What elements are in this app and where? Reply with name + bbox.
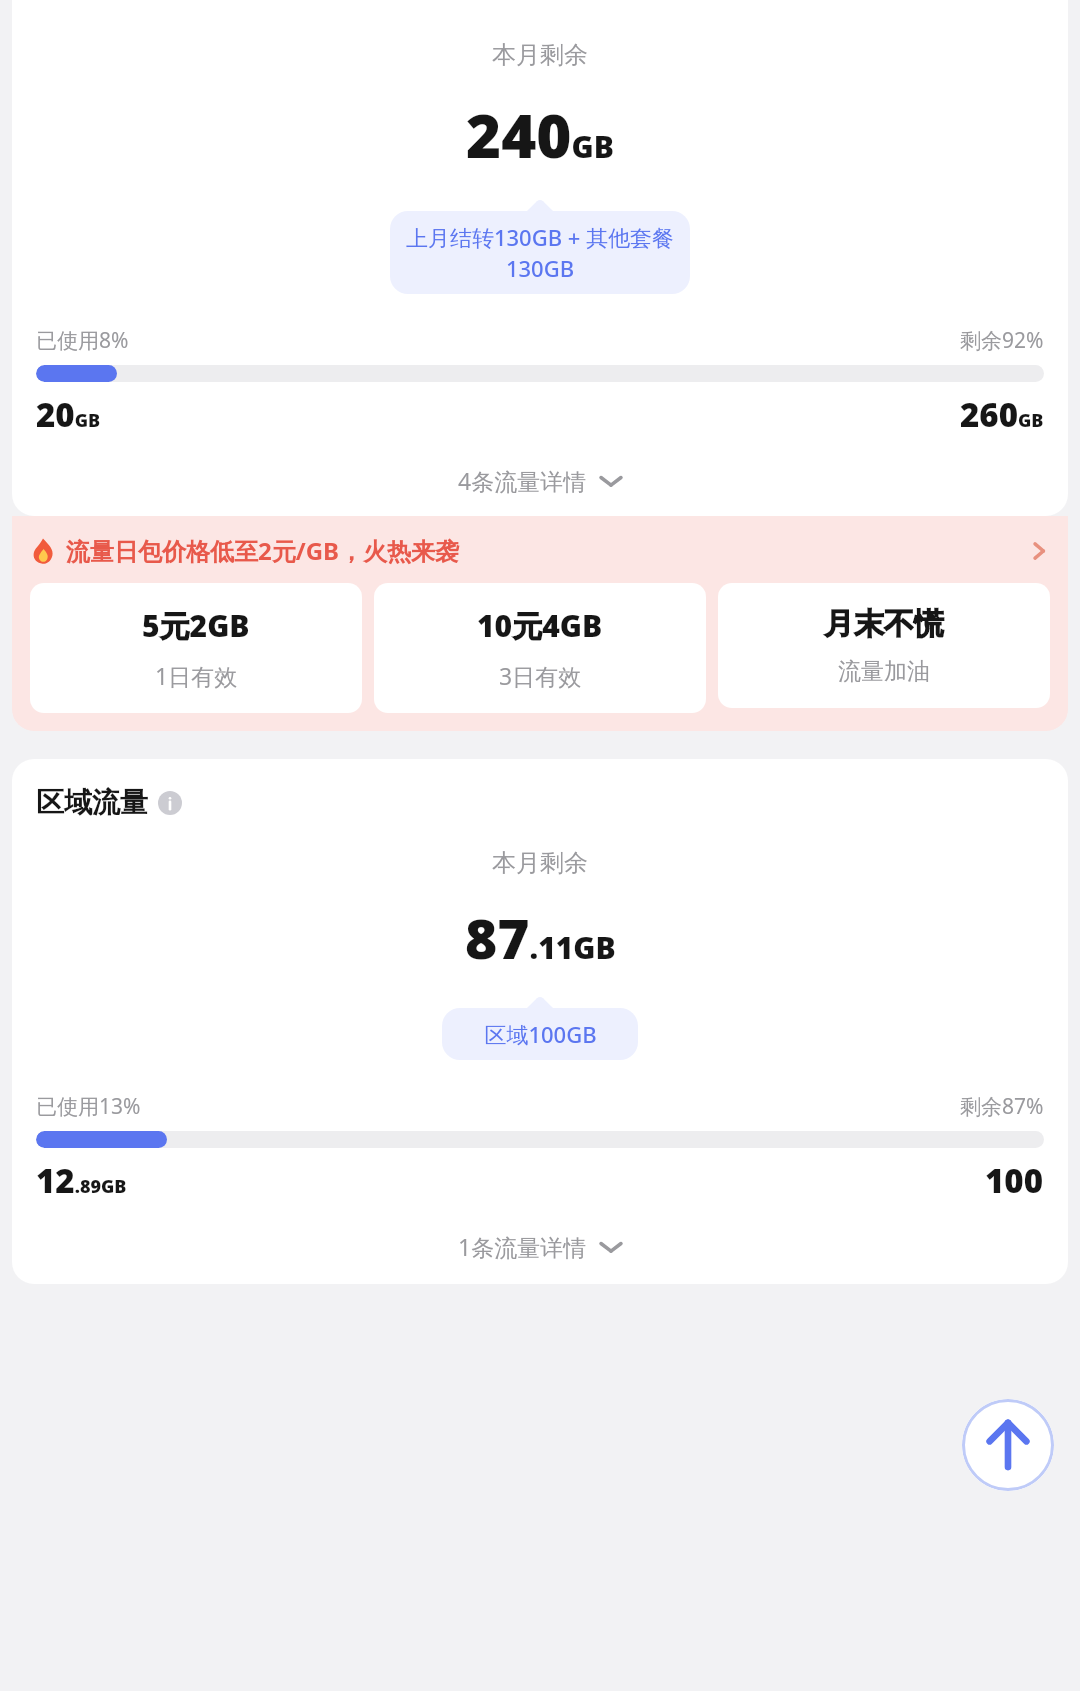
button[interactable]: 1条流量详情 (444, 1225, 637, 1268)
button[interactable]: 流量日包价格低至2元/GB，火热来袭 (12, 516, 1068, 731)
button[interactable]: 月末不慌 (718, 583, 1050, 708)
staticText: 10元4GB (477, 605, 603, 646)
staticText: 本月剩余 (492, 848, 588, 878)
staticText: 1条流量详情 (458, 1231, 587, 1262)
staticText: 已使用13% (36, 1092, 141, 1121)
button[interactable]: 5元2GB (30, 583, 362, 713)
button[interactable]: 10元4GB (374, 583, 706, 713)
staticText: 已使用8% (36, 326, 129, 355)
staticText: 260GB (960, 392, 1044, 437)
staticText: 5元2GB (142, 605, 250, 646)
button[interactable]: 4条流量详情 (444, 459, 637, 502)
other: 更多 (1028, 540, 1050, 562)
button[interactable]: 上月结转130GB + 其他套餐130GB (390, 211, 690, 294)
staticText: 剩余92% (960, 326, 1044, 355)
staticText: 区域流量 (36, 785, 148, 820)
staticText: 剩余87% (960, 1092, 1044, 1121)
staticText: 100 (985, 1158, 1044, 1203)
staticText: 区域100GB (484, 1019, 597, 1049)
button[interactable]: 说明 (158, 791, 182, 815)
button[interactable]: 区域100GB (442, 1008, 638, 1060)
staticText: 3日有效 (499, 660, 582, 691)
staticText: 4条流量详情 (458, 465, 587, 496)
staticText: 流量日包价格低至2元/GB，火热来袭 (66, 534, 460, 567)
button[interactable]: 返回顶部 (962, 1399, 1054, 1491)
staticText: 12.89GB (36, 1158, 127, 1203)
staticText: 1日有效 (155, 660, 238, 691)
staticText: 87.11GB (465, 900, 616, 975)
staticText: 20GB (36, 392, 101, 437)
staticText: 240GB (466, 94, 614, 176)
staticText: 流量加油 (838, 657, 930, 686)
staticText: 本月剩余 (492, 40, 588, 70)
staticText: 上月结转130GB + 其他套餐130GB (390, 222, 690, 283)
staticText: 月末不慌 (824, 605, 944, 643)
